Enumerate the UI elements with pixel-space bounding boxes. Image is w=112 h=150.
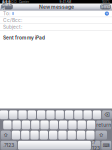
button[interactable]: Key [83,110,92,119]
button[interactable]: return [96,121,111,129]
button[interactable]: Key [86,131,94,139]
button[interactable]: Key [65,110,73,119]
button[interactable]: Key [78,121,86,129]
button[interactable]: Key [68,131,76,139]
button[interactable]: Cancel [1,4,12,9]
button[interactable]: Key [30,131,39,139]
button[interactable]: ⌫ [102,110,112,119]
button[interactable]: Key [40,131,48,139]
button[interactable]: ⇧ [95,131,107,139]
button[interactable]: Key [93,110,101,119]
button[interactable]: Key [74,110,82,119]
staticText: Cancel [2,2,12,12]
button[interactable]: Key [12,131,20,139]
button[interactable]: Key [40,121,49,129]
button[interactable]: Key [59,121,67,129]
staticText: + [105,11,108,16]
staticText: 100% [102,0,110,4]
button[interactable]: Key [37,110,45,119]
button[interactable]: Key [58,131,67,139]
staticText: ⇧ [99,132,104,138]
button[interactable]: ⇧ [1,131,11,139]
staticText: New message [39,4,74,10]
button[interactable]: Key [12,121,21,129]
button[interactable]: Key [49,131,57,139]
button[interactable]: Send [100,4,110,9]
button[interactable]: Key [68,121,77,129]
button[interactable]: Key [46,110,55,119]
button[interactable]: Key [3,121,11,129]
button[interactable]: Key [50,121,58,129]
staticText: ⇧ [3,132,8,138]
button[interactable]: .?123 [1,141,17,150]
staticText: .?123 [92,139,100,150]
staticText: .?123 [3,142,14,148]
staticText: ⌨ [103,142,110,148]
button[interactable]: Key [0,110,8,119]
button[interactable]: Add contact [105,11,109,16]
staticText: return [96,122,111,128]
button[interactable]: ⌨ [101,141,111,150]
staticText: Send [100,4,110,9]
button[interactable]: Key [21,131,29,139]
button[interactable]: Key [56,110,64,119]
button[interactable]: Key [18,141,91,150]
button[interactable]: Key [31,121,39,129]
staticText: ●●●○○ Carrier [2,0,29,4]
staticText: ⌫ [104,112,110,118]
button[interactable]: Key [22,121,30,129]
button[interactable]: .?123 [92,141,100,150]
button[interactable]: Key [87,121,95,129]
button[interactable]: Key [77,131,85,139]
button[interactable]: Key [9,110,17,119]
button[interactable]: Key [18,110,27,119]
staticText: Subject: [3,24,22,30]
staticText: Cc/Bcc: [3,17,22,23]
staticText: To: [3,11,10,16]
staticText: 9:41 AM [59,0,71,4]
staticText: Sent from my iPad [3,35,45,41]
button[interactable]: Key [28,110,36,119]
